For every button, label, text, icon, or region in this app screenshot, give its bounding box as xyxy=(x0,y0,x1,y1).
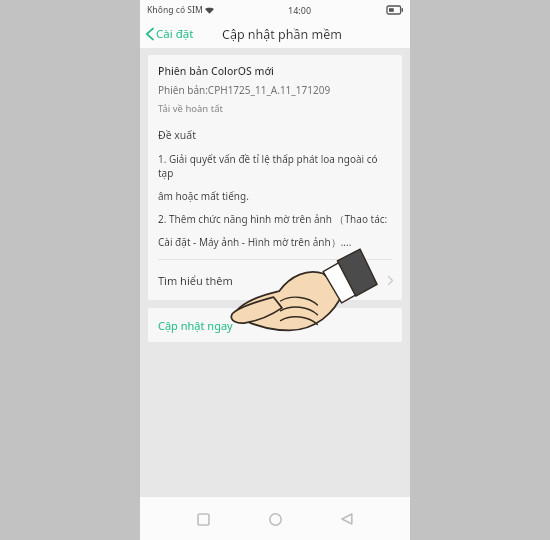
button[interactable]: Cài đặt xyxy=(140,21,202,47)
staticText: Phiên bản ColorOS mới xyxy=(158,64,274,78)
staticText: Tải về hoàn tất xyxy=(158,102,223,115)
staticText: Cài đặt - Máy ảnh - Hình mờ trên ảnh）...… xyxy=(158,235,352,249)
staticText: Không có SIM xyxy=(147,4,203,16)
staticText: 14:00 xyxy=(288,4,312,16)
staticText: Tìm hiểu thêm xyxy=(158,273,233,288)
staticText: 1. Giải quyết vấn đề tỉ lệ thấp phát loa… xyxy=(158,152,392,180)
button[interactable]: Cập nhật ngay xyxy=(148,308,402,342)
staticText: âm hoặc mất tiếng. xyxy=(158,189,249,203)
button[interactable]: Tìm hiểu thêm xyxy=(148,260,402,300)
staticText: Cập nhật ngay xyxy=(158,318,233,333)
button[interactable]: Recent apps xyxy=(189,505,217,533)
staticText: Cài đặt xyxy=(156,26,194,42)
staticText: Cập nhật phần mềm xyxy=(222,26,342,43)
button[interactable]: Back xyxy=(333,505,361,533)
staticText: 2. Thêm chức năng hình mờ trên ảnh （Thao… xyxy=(158,212,388,226)
button[interactable]: Home xyxy=(261,505,289,533)
staticText: Đề xuất xyxy=(158,128,197,142)
staticText: Phiên bản:CPH1725_11_A.11_171209 xyxy=(158,83,331,97)
